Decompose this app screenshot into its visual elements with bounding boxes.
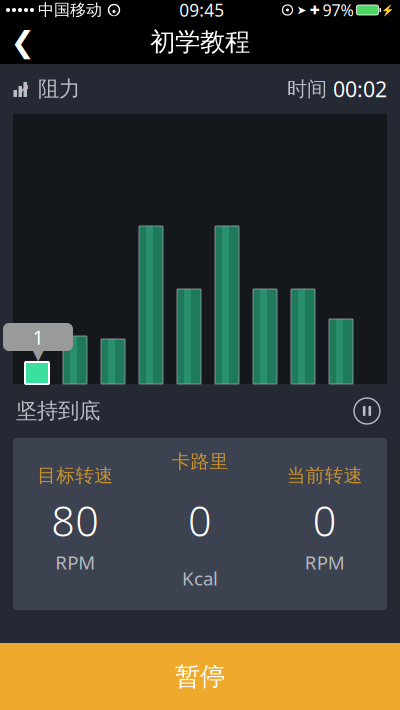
staticText: 中国移动: [38, 0, 102, 20]
staticText: 阻力: [38, 76, 80, 102]
staticText: 卡路里: [171, 450, 228, 473]
staticText: RPM: [305, 550, 345, 575]
staticText: 目标转速: [37, 464, 113, 487]
staticText: 1: [32, 324, 43, 350]
staticText: 0: [188, 493, 212, 548]
staticText: ✚: [309, 3, 319, 17]
button[interactable]: Pause workout: [350, 394, 384, 428]
staticText: 时间: [287, 77, 327, 101]
staticText: ⚡: [381, 4, 394, 16]
staticText: 97%: [322, 0, 353, 21]
staticText: 80: [51, 493, 99, 548]
staticText: RPM: [55, 550, 95, 575]
staticText: 00:02: [333, 75, 387, 103]
staticText: 坚持到底: [16, 398, 100, 424]
staticText: ❮: [10, 25, 35, 59]
staticText: ▼: [31, 344, 44, 363]
staticText: ↗: [18, 81, 29, 96]
staticText: ➤: [296, 3, 306, 17]
staticText: 09:45: [179, 0, 224, 21]
staticText: 当前转速: [287, 464, 363, 487]
staticText: 暂停: [175, 661, 225, 692]
button[interactable]: Back: [0, 20, 46, 64]
staticText: 初学教程: [150, 26, 250, 57]
staticText: Kcal: [182, 566, 218, 591]
staticText: 0: [313, 493, 337, 548]
button[interactable]: 暂停: [0, 643, 400, 710]
